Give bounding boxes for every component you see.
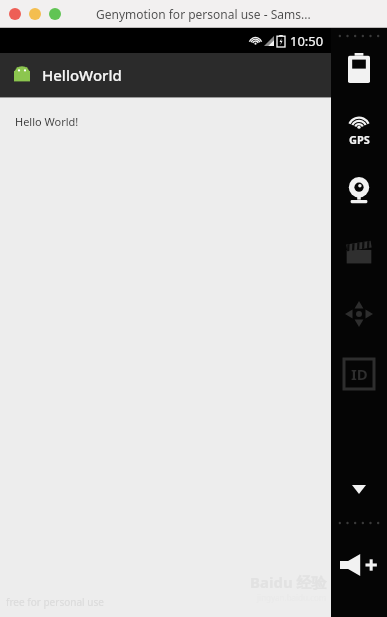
button[interactable]: Camera xyxy=(333,170,385,210)
button[interactable]: Volume up xyxy=(333,545,385,585)
button[interactable]: Zoom xyxy=(49,8,61,20)
button[interactable]: Minimize xyxy=(29,8,41,20)
button[interactable]: HelloWorld xyxy=(0,53,331,97)
staticText: free for personal use xyxy=(6,595,104,609)
staticText: ID xyxy=(351,364,368,384)
staticText: GPS xyxy=(349,132,370,147)
staticText: Baidu 经验 xyxy=(250,572,327,592)
button[interactable]: Identifiers xyxy=(333,354,385,394)
button[interactable]: More xyxy=(333,469,385,509)
button[interactable]: Battery xyxy=(333,48,385,88)
button[interactable]: GPS xyxy=(333,110,385,150)
staticText: HelloWorld xyxy=(42,65,122,85)
button[interactable]: Screen recorder xyxy=(333,232,385,272)
staticText: 10:50 xyxy=(290,32,324,50)
staticText: Genymotion for personal use - Sams... xyxy=(96,6,311,22)
staticText: Hello World! xyxy=(15,114,79,129)
button[interactable]: Close xyxy=(9,8,21,20)
button[interactable]: Rotation xyxy=(333,294,385,334)
